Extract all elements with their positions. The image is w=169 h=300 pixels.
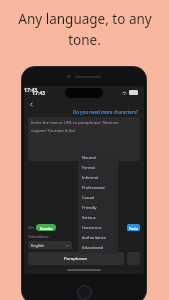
staticText: On — [28, 225, 34, 231]
button[interactable]: Do you need more characters? — [24, 109, 139, 115]
button[interactable]: Educational — [78, 242, 118, 252]
staticText: Do you need more characters? — [73, 109, 139, 115]
staticText: Friendly — [82, 205, 97, 210]
staticText: 17:43 — [32, 89, 46, 96]
staticText: 17:43 — [24, 86, 38, 93]
button[interactable]: English — [28, 241, 72, 249]
button[interactable]: Humorous — [78, 222, 118, 232]
staticText: Translation: — [28, 234, 49, 239]
staticText: Rewrite — [40, 226, 53, 230]
staticText: Paraphrase — [64, 256, 88, 262]
staticText: Enter the text or URL to paraphrase. Now… — [31, 120, 119, 126]
button[interactable]: Formal — [78, 162, 118, 172]
other: Home — [77, 285, 92, 300]
button[interactable]: Serious — [78, 212, 118, 222]
button[interactable]: Paraphrase — [28, 252, 124, 265]
button[interactable]: Enter the text or URL to paraphrase. Now… — [28, 117, 140, 161]
button[interactable]: Casual — [78, 192, 118, 202]
button[interactable]: Neutral — [78, 152, 118, 162]
staticText: Casual — [82, 195, 95, 200]
staticText: Authoritative — [82, 235, 106, 240]
staticText: Educational — [82, 245, 104, 250]
staticText: Formal — [82, 165, 95, 170]
staticText: English — [31, 243, 44, 248]
staticText: Informal — [82, 175, 98, 180]
button[interactable]: Professional — [78, 182, 118, 192]
staticText: Humorous — [82, 225, 102, 230]
button[interactable]: Back — [24, 99, 144, 109]
button[interactable]: Rewrite — [36, 224, 56, 231]
staticText: support Youtube links! — [31, 128, 76, 134]
staticText: Serious — [82, 215, 96, 220]
button[interactable]: Friendly — [78, 202, 118, 212]
button[interactable]: Informal — [78, 172, 118, 182]
button[interactable]: More options — [127, 252, 140, 265]
staticText: Professional — [82, 185, 105, 190]
button[interactable]: Paste — [127, 224, 140, 231]
button[interactable]: Authoritative — [78, 232, 118, 242]
staticText: Any language, to any — [18, 10, 152, 28]
staticText: tone. — [68, 31, 101, 49]
staticText: Neutral — [82, 155, 96, 160]
staticText: Paste — [129, 226, 138, 230]
